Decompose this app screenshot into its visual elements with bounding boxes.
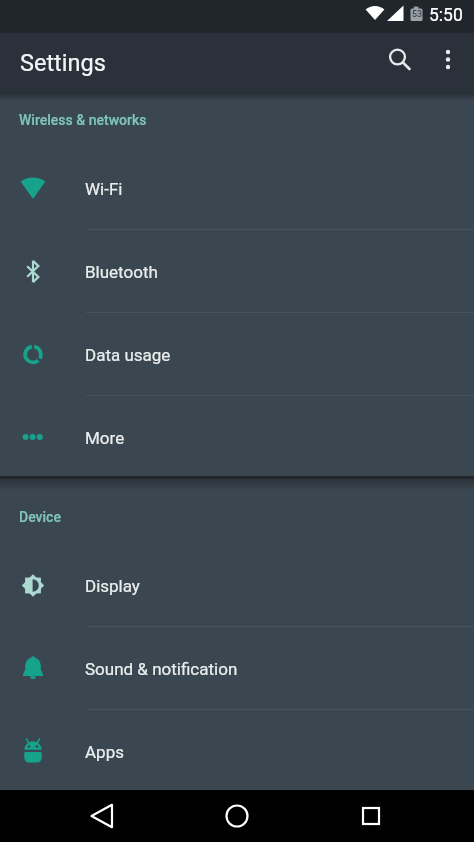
staticText: Settings — [20, 49, 106, 77]
staticText: Apps — [85, 742, 124, 762]
staticText: More — [85, 428, 125, 448]
staticText: Device — [19, 509, 61, 525]
staticText: Wi-Fi — [85, 179, 123, 199]
staticText: Display — [85, 576, 140, 596]
staticText: 53 — [412, 9, 423, 20]
staticText: Wireless & networks — [19, 112, 147, 128]
staticText: Sound & notification — [85, 659, 238, 679]
staticText: 5:50 — [429, 5, 463, 26]
staticText: Bluetooth — [85, 262, 158, 282]
staticText: Data usage — [85, 345, 171, 365]
